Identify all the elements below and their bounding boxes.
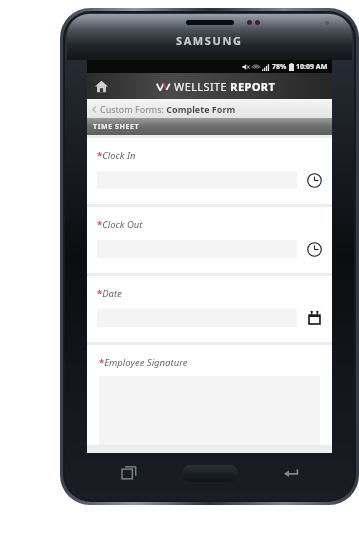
button[interactable]: Recent apps	[116, 460, 142, 486]
button[interactable]: *Clock Out	[87, 207, 332, 273]
staticText: *Clock Out	[97, 218, 143, 231]
staticText: WELLSITE REPORT	[174, 79, 276, 94]
staticText: Custom Forms: Complete Form	[100, 103, 236, 115]
staticText: 78%	[272, 62, 287, 72]
button[interactable]: Back	[277, 460, 303, 486]
button[interactable]: Pick date	[304, 308, 324, 328]
staticText: *Date	[97, 287, 122, 300]
button[interactable]: Pick time	[304, 239, 324, 259]
button[interactable]: *Clock In	[87, 138, 332, 204]
staticText: SAMSUNG	[176, 33, 243, 48]
button[interactable]: *Employee Signature	[87, 345, 332, 445]
button[interactable]: Home	[182, 465, 238, 482]
staticText: *Clock In	[97, 149, 136, 162]
staticText: TIME SHEET	[93, 122, 140, 132]
button[interactable]: Pick time	[304, 170, 324, 190]
button[interactable]: Home	[89, 74, 113, 98]
staticText: *Employee Signature	[99, 356, 188, 369]
staticText: 10:09 AM	[296, 62, 328, 72]
button[interactable]: Custom Forms: Complete Form	[87, 99, 332, 118]
button[interactable]: *Date	[87, 276, 332, 342]
